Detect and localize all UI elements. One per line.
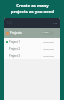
staticText: Yesterday bbox=[43, 54, 54, 57]
staticText: Yesterday bbox=[43, 40, 54, 43]
button[interactable]: Project 1 bbox=[4, 38, 60, 45]
staticText: Project 3 bbox=[9, 54, 21, 58]
staticText: Yesterday bbox=[43, 47, 54, 50]
staticText: Create as many projects as you need bbox=[11, 3, 54, 14]
staticText: + New project bbox=[42, 31, 54, 35]
staticText: Project 1 bbox=[9, 40, 21, 44]
button[interactable]: Project 2 bbox=[4, 45, 60, 52]
button[interactable]: Project 3 bbox=[4, 52, 60, 59]
staticText: Project 2 bbox=[9, 47, 21, 51]
staticText: 9:41 bbox=[7, 21, 13, 25]
staticText: Projects bbox=[10, 31, 22, 35]
button[interactable]: + New project bbox=[42, 31, 54, 35]
